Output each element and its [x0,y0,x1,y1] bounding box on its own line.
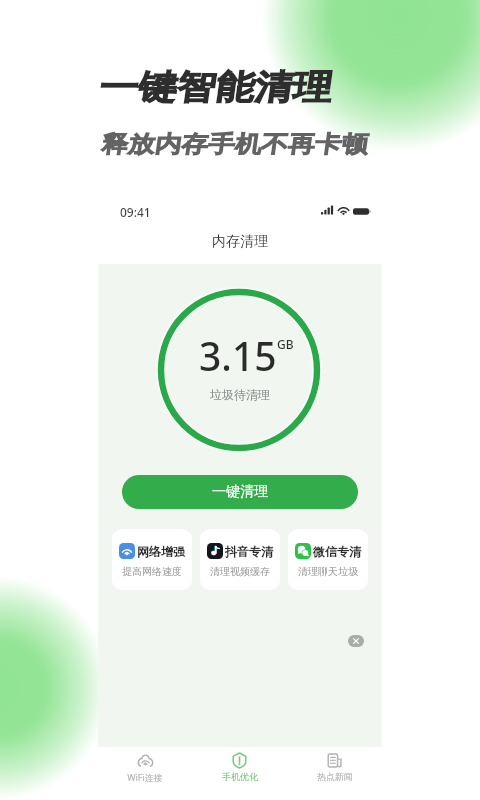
button[interactable]: 网络增强 [112,529,192,590]
button[interactable]: 热点新闻 [287,747,382,782]
staticText: 一键清理 [212,483,268,501]
button[interactable]: 抖音专清 [200,529,280,590]
staticText: GB [277,336,294,352]
button[interactable]: 手机优化 [192,747,287,782]
staticText: 一键智能清理 [117,66,321,109]
staticText: 内存清理 [212,233,268,251]
button[interactable]: 一键清理 [122,475,358,509]
button[interactable]: WiFi连接 [98,747,192,783]
staticText: 09:41 [120,204,151,220]
staticText: 手机优化 [222,771,258,782]
staticText: 抖音专清 [225,544,273,559]
staticText: 3.15 [199,329,277,382]
staticText: 清理聊天垃圾 [298,565,358,578]
staticText: 网络增强 [137,544,185,559]
staticText: 释放内存手机不再卡顿 [122,130,352,159]
staticText: WiFi连接 [127,771,163,783]
button[interactable]: Close ad [348,635,364,647]
button[interactable]: 微信专清 [288,529,368,590]
staticText: 垃圾待清理 [210,387,270,402]
staticText: 清理视频缓存 [210,565,270,578]
staticText: 提高网络速度 [122,565,182,578]
staticText: 微信专清 [313,544,361,559]
staticText: 热点新闻 [317,771,353,782]
